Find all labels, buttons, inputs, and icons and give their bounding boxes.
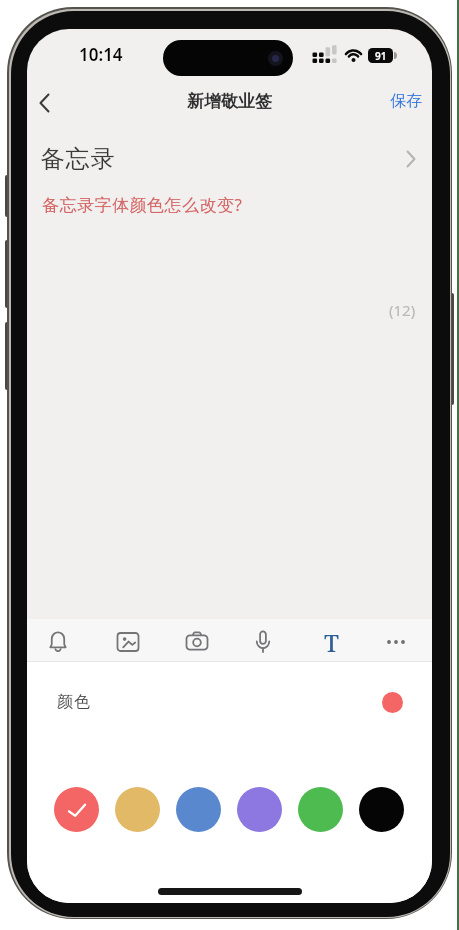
staticText: 备忘录 [40,144,115,174]
button[interactable] [251,630,275,654]
staticText: (12) [389,300,416,320]
button[interactable] [54,787,99,832]
button[interactable]: 备忘录 [27,141,432,177]
staticText: 91 [375,49,387,63]
button[interactable] [176,787,221,832]
button[interactable] [39,93,50,113]
staticText: 颜色 [56,692,91,712]
staticText: 保存 [390,91,422,111]
staticText: 10:14 [79,43,123,66]
button[interactable] [237,787,282,832]
button[interactable] [116,630,140,654]
button[interactable] [185,630,209,654]
staticText: T [324,626,339,658]
staticText: 备忘录字体颜色怎么改变? [42,193,243,216]
button[interactable] [46,630,70,654]
button[interactable] [298,787,343,832]
button[interactable] [359,787,404,832]
button[interactable]: 保存 [390,91,422,111]
button[interactable]: 颜色 [27,684,432,720]
button[interactable] [385,630,409,654]
button[interactable] [115,787,160,832]
button[interactable]: T [317,626,345,658]
staticText: 新增敬业签 [187,91,272,112]
